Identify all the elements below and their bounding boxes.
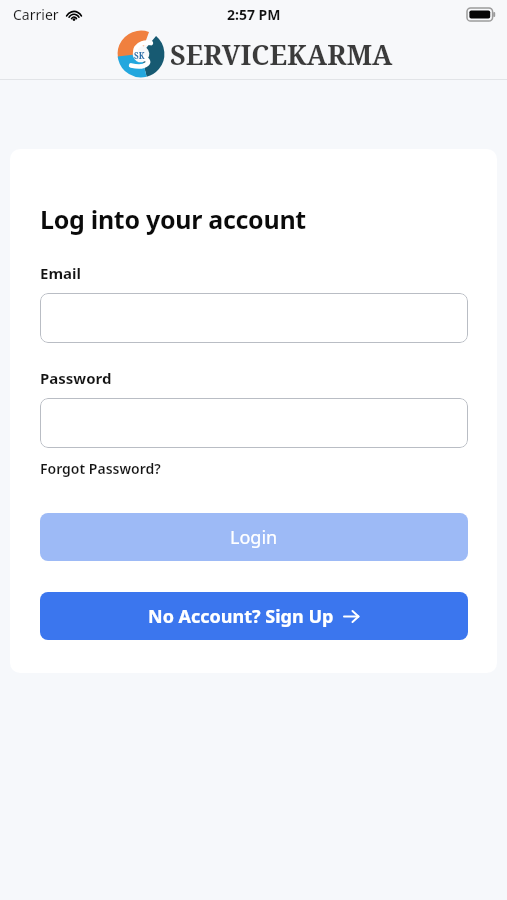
staticText: No Account? Sign Up — [148, 604, 334, 629]
staticText: Email — [40, 263, 81, 283]
staticText: SERVICEKARMA — [170, 36, 393, 73]
staticText: Password — [40, 368, 112, 388]
staticText: 2:57 PM — [227, 5, 281, 24]
button[interactable]: Password input — [40, 398, 468, 448]
staticText: Log into your account — [40, 202, 306, 236]
button[interactable]: Login — [40, 513, 468, 561]
staticText: Login — [230, 525, 278, 550]
button[interactable]: Email input — [40, 293, 468, 343]
button[interactable]: No Account? Sign Up — [40, 592, 468, 640]
staticText: Carrier — [13, 5, 59, 24]
staticText: SK — [134, 50, 145, 61]
button[interactable]: Forgot Password? — [40, 459, 161, 478]
